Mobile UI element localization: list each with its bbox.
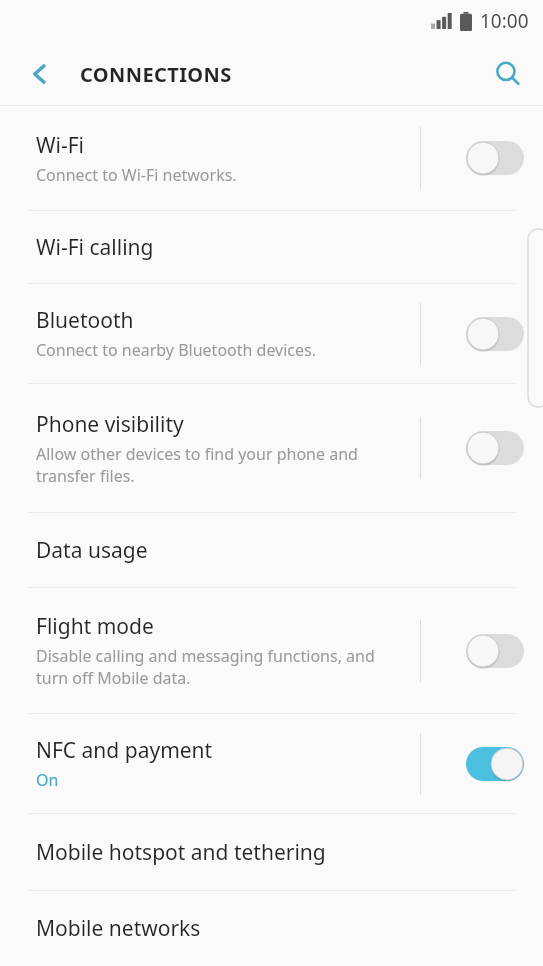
button[interactable]: Phone visibility [0, 384, 543, 512]
button[interactable]: Phone visibility toggle [464, 428, 526, 468]
staticText: Bluetooth [36, 306, 134, 335]
button[interactable]: Search [473, 42, 543, 106]
button[interactable]: Flight mode toggle [464, 631, 526, 671]
staticText: CONNECTIONS [80, 61, 232, 88]
staticText: Mobile networks [36, 914, 201, 943]
staticText: NFC and payment [36, 736, 213, 765]
staticText: Phone visibility [36, 410, 184, 439]
button[interactable]: Bluetooth [0, 284, 543, 383]
staticText: Connect to Wi-Fi networks. [36, 164, 237, 186]
staticText: Disable calling and messaging functions,… [36, 645, 408, 689]
button[interactable]: Flight mode [0, 588, 543, 713]
staticText: On [36, 769, 59, 791]
staticText: Data usage [36, 536, 148, 565]
staticText: Flight mode [36, 612, 154, 641]
staticText: Mobile hotspot and tethering [36, 838, 326, 867]
staticText: Wi-Fi calling [36, 233, 154, 262]
staticText: Connect to nearby Bluetooth devices. [36, 339, 317, 361]
button[interactable]: Bluetooth toggle [464, 314, 526, 354]
button[interactable]: Back [0, 42, 80, 106]
button[interactable]: Wi-Fi calling [0, 211, 543, 283]
staticText: Wi-Fi [36, 131, 85, 160]
staticText: 10:00 [480, 8, 529, 34]
button[interactable]: NFC and payment [0, 714, 543, 813]
button[interactable]: Data usage [0, 513, 543, 587]
button[interactable]: Wi-Fi toggle [464, 138, 526, 178]
button[interactable]: Wi-Fi [0, 106, 543, 210]
button[interactable]: Mobile hotspot and tethering [0, 814, 543, 890]
staticText: Allow other devices to find your phone a… [36, 443, 408, 487]
button[interactable]: Mobile networks [0, 891, 543, 966]
button[interactable]: NFC and payment toggle [464, 744, 526, 784]
